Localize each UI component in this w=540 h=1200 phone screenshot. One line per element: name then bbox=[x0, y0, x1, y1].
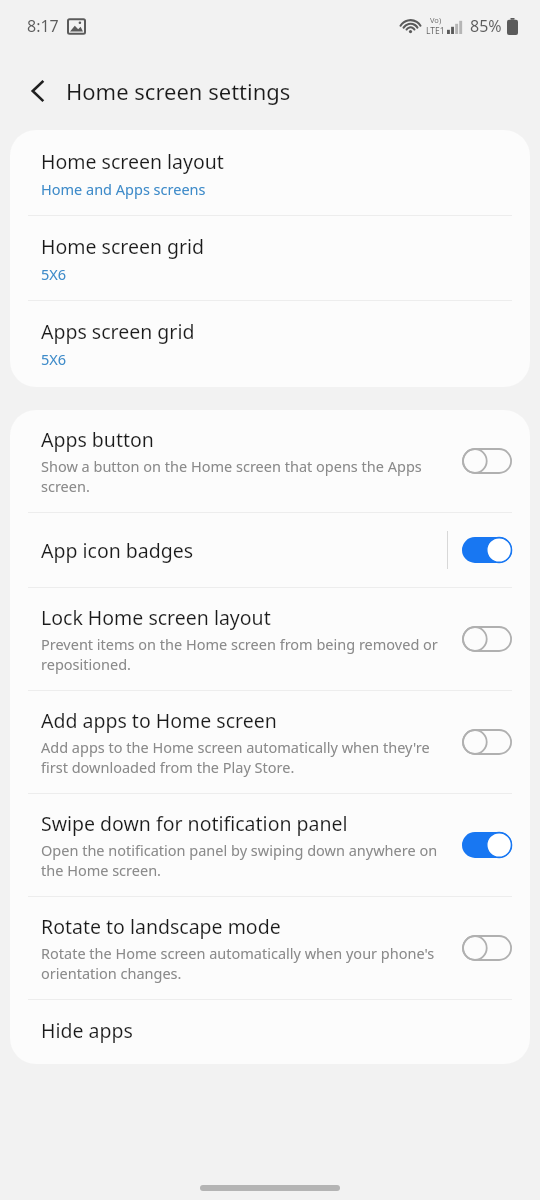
staticText: Hide apps bbox=[41, 1017, 133, 1044]
staticText: Home and Apps screens bbox=[41, 179, 206, 199]
staticText: Open the notification panel by swiping d… bbox=[41, 840, 452, 880]
button[interactable]: Toggle on bbox=[462, 535, 512, 565]
button[interactable]: Toggle on bbox=[462, 830, 512, 860]
button[interactable]: Home screen grid bbox=[10, 216, 530, 300]
staticText: LTE1 bbox=[426, 25, 445, 37]
staticText: Home screen settings bbox=[66, 76, 291, 106]
staticText: Home screen layout bbox=[41, 148, 224, 175]
staticText: Rotate the Home screen automatically whe… bbox=[41, 943, 452, 983]
button[interactable]: Back bbox=[16, 69, 60, 113]
staticText: 5X6 bbox=[41, 264, 67, 284]
staticText: 8:17 bbox=[27, 15, 59, 37]
staticText: 5X6 bbox=[41, 349, 67, 369]
button[interactable]: Add apps to Home screen bbox=[10, 691, 530, 793]
button[interactable]: App icon badges bbox=[10, 513, 530, 587]
staticText: Show a button on the Home screen that op… bbox=[41, 456, 452, 496]
button[interactable]: Home screen layout bbox=[10, 130, 530, 215]
button[interactable]: Toggle off bbox=[462, 727, 512, 757]
staticText: App icon badges bbox=[41, 537, 194, 564]
button[interactable]: Apps screen grid bbox=[10, 301, 530, 387]
staticText: Apps button bbox=[41, 426, 154, 453]
button[interactable]: Toggle off bbox=[462, 446, 512, 476]
staticText: Apps screen grid bbox=[41, 318, 195, 345]
button[interactable]: Toggle off bbox=[462, 933, 512, 963]
button[interactable]: Swipe down for notification panel bbox=[10, 794, 530, 896]
button[interactable]: Hide apps bbox=[10, 1000, 530, 1064]
staticText: Rotate to landscape mode bbox=[41, 913, 281, 940]
staticText: Add apps to the Home screen automaticall… bbox=[41, 737, 452, 777]
staticText: Vo) bbox=[430, 15, 442, 25]
staticText: Prevent items on the Home screen from be… bbox=[41, 634, 452, 674]
button[interactable]: Toggle off bbox=[462, 624, 512, 654]
button[interactable]: Apps button bbox=[10, 410, 530, 512]
staticText: Add apps to Home screen bbox=[41, 707, 277, 734]
staticText: 85% bbox=[470, 15, 502, 37]
staticText: Home screen grid bbox=[41, 233, 205, 260]
button[interactable]: Lock Home screen layout bbox=[10, 588, 530, 690]
staticText: Swipe down for notification panel bbox=[41, 810, 348, 837]
button[interactable]: Rotate to landscape mode bbox=[10, 897, 530, 999]
staticText: Lock Home screen layout bbox=[41, 604, 271, 631]
